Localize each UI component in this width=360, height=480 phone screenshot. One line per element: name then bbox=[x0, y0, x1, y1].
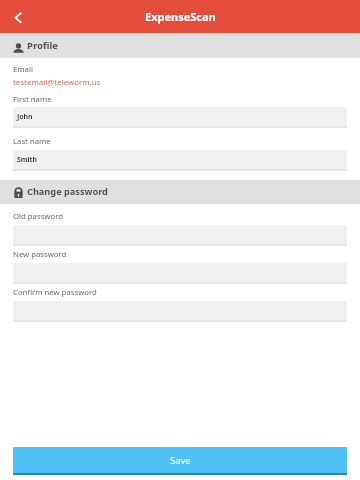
staticText: ExpenseScan bbox=[145, 9, 216, 24]
button[interactable]: Save bbox=[13, 447, 347, 475]
button[interactable]: John bbox=[13, 107, 347, 128]
staticText: Profile bbox=[27, 39, 58, 52]
staticText: Last name bbox=[13, 136, 51, 147]
staticText: Smith bbox=[17, 155, 38, 164]
staticText: Save bbox=[170, 454, 191, 467]
staticText: testemail@teleworm.us bbox=[13, 77, 101, 88]
staticText: First name bbox=[13, 94, 52, 105]
staticText: New password bbox=[13, 249, 67, 260]
staticText: Email bbox=[13, 64, 33, 75]
button[interactable] bbox=[13, 263, 347, 284]
staticText: Confirm new password bbox=[13, 287, 97, 298]
staticText: Old password bbox=[13, 211, 63, 222]
button[interactable]: Change password bbox=[0, 180, 360, 204]
button[interactable] bbox=[13, 301, 347, 322]
staticText: Change password bbox=[27, 185, 108, 198]
staticText: John bbox=[17, 112, 33, 121]
button[interactable]: Profile bbox=[0, 33, 360, 58]
button[interactable] bbox=[13, 225, 347, 246]
button[interactable]: Smith bbox=[13, 150, 347, 171]
button[interactable]: Back bbox=[4, 0, 26, 33]
